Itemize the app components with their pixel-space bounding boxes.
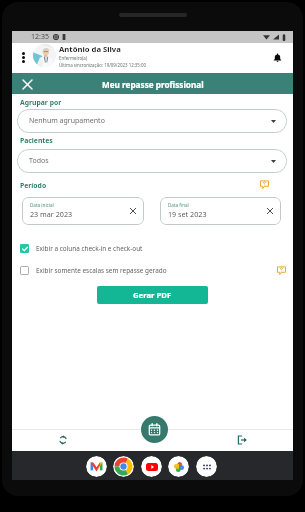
staticText: Antônio da Silva [59,44,121,54]
staticText: Todos [29,156,49,166]
staticText: Última sincronização: 19/09/2023 12:35:0… [59,62,147,68]
button[interactable]: Exibir a coluna check-in e check-out [12,241,293,255]
staticText: Data inicial [30,202,54,208]
button[interactable]: Notifications [269,50,285,66]
button[interactable]: Data inicial [22,197,144,225]
button[interactable]: Sync [51,429,75,451]
staticText: Enfermeiro(a) [59,55,88,61]
staticText: 12:35 [31,32,49,42]
button[interactable]: Close [20,77,35,92]
staticText: Meu repasse profissional [102,79,204,90]
button[interactable]: More options [17,43,29,72]
staticText: Data final [168,202,189,208]
button[interactable]: Gerar PDF [97,286,208,304]
button[interactable]: Calendar [141,416,168,443]
button[interactable]: All apps [196,456,217,477]
button[interactable]: Logout [230,429,254,451]
button[interactable]: Data final [160,197,281,225]
staticText: Gerar PDF [133,290,172,300]
button[interactable]: Gmail [86,456,107,477]
button[interactable]: Chrome [113,456,134,477]
staticText: Exibir somente escalas sem repasse gerad… [36,266,167,275]
button[interactable]: Help [274,263,288,277]
button[interactable]: Photos [168,456,189,477]
button[interactable]: Nenhum agrupamento [17,109,287,133]
staticText: Nenhum agrupamento [29,116,105,126]
staticText: Período [20,181,47,190]
staticText: Exibir a coluna check-in e check-out [36,244,143,253]
staticText: Pacientes [20,136,53,145]
staticText: 19 set 2023 [168,209,207,219]
button[interactable]: Todos [17,149,287,173]
button[interactable]: Exibir somente escalas sem repasse gerad… [12,263,293,277]
button[interactable]: YouTube [141,456,162,477]
staticText: Agrupar por [20,98,62,107]
staticText: 23 mar 2023 [30,209,73,219]
button[interactable]: Help about period [257,177,271,191]
